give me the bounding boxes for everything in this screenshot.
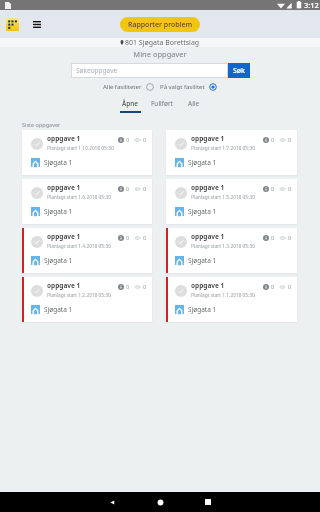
staticText: oppgave 1: [47, 134, 81, 143]
staticText: oppgave 1: [191, 232, 225, 241]
button[interactable]: Menu: [30, 15, 43, 33]
staticText: 0: [126, 136, 130, 143]
staticText: Planlagt start 1.10.2018 05:30: [47, 145, 114, 152]
staticText: 0: [143, 185, 147, 192]
staticText: Mine oppgaver: [0, 49, 320, 59]
button[interactable]: Logo: [6, 18, 19, 31]
staticText: Åpne: [122, 99, 139, 108]
staticText: Alle: [188, 99, 200, 108]
button[interactable]: oppgave 1: [166, 179, 297, 224]
staticText: 0: [288, 185, 292, 192]
staticText: Sjøgata 1: [44, 158, 73, 167]
staticText: Søk: [233, 66, 246, 76]
button[interactable]: oppgave 1: [166, 228, 297, 273]
staticText: 0: [143, 136, 147, 143]
button[interactable]: oppgave 1: [22, 277, 152, 322]
staticText: Sjøgata 1: [188, 158, 217, 167]
staticText: 0: [126, 283, 130, 290]
button[interactable]: Søk: [228, 63, 250, 78]
button[interactable]: Recent apps: [193, 492, 223, 512]
staticText: 0: [288, 283, 292, 290]
button[interactable]: oppgave 1: [166, 277, 297, 322]
staticText: 3:12: [304, 0, 319, 10]
staticText: oppgave 1: [191, 134, 225, 143]
button[interactable]: Alle fasiliteter: [103, 83, 154, 91]
staticText: Planlagt start 1.5.2018 05:30: [191, 194, 255, 201]
button[interactable]: oppgave 1: [22, 228, 152, 273]
button[interactable]: oppgave 1: [22, 130, 152, 175]
button[interactable]: Alle: [181, 99, 206, 113]
button[interactable]: oppgave 1: [22, 179, 152, 224]
staticText: Sjøgata 1: [44, 207, 73, 216]
staticText: Sjøgata 1: [188, 207, 217, 216]
staticText: oppgave 1: [191, 281, 225, 290]
staticText: Fullført: [151, 99, 173, 108]
staticText: Sjøgata 1: [44, 305, 73, 314]
staticText: 0: [271, 136, 275, 143]
staticText: 0: [288, 234, 292, 241]
staticText: 801 Sjøgata Borettslag: [125, 38, 200, 47]
staticText: 0: [143, 234, 147, 241]
button[interactable]: oppgave 1: [166, 130, 297, 175]
staticText: 0: [271, 234, 275, 241]
staticText: 0: [143, 283, 147, 290]
staticText: Alle fasiliteter: [103, 83, 142, 91]
staticText: Siste oppgaver: [22, 121, 61, 128]
staticText: 0: [126, 185, 130, 192]
staticText: På valgt fasilitet: [160, 83, 205, 91]
staticText: Planlagt start 1.2.2018 05:30: [47, 292, 111, 299]
staticText: Planlagt start 1.3.2018 05:30: [191, 243, 255, 250]
staticText: 0: [126, 234, 130, 241]
button[interactable]: På valgt fasilitet: [160, 83, 217, 91]
staticText: Planlagt start 1.6.2018 05:30: [47, 194, 111, 201]
button[interactable]: Back: [97, 492, 127, 512]
button[interactable]: Åpne: [118, 99, 143, 113]
staticText: Sjøgata 1: [44, 256, 73, 265]
staticText: oppgave 1: [191, 183, 225, 192]
staticText: 0: [288, 136, 292, 143]
staticText: Sjøgata 1: [188, 256, 217, 265]
staticText: Sjøgata 1: [188, 305, 217, 314]
staticText: Rapporter problem: [128, 20, 193, 30]
staticText: oppgave 1: [47, 183, 81, 192]
staticText: Planlagt start 1.4.2018 05:30: [47, 243, 111, 250]
button[interactable]: Home: [145, 492, 175, 512]
staticText: Søkeoppgave: [76, 66, 118, 75]
staticText: Planlagt start 1.1.2018 05:30: [191, 292, 255, 299]
button[interactable]: Rapporter problem: [120, 17, 200, 32]
staticText: oppgave 1: [47, 232, 81, 241]
staticText: 0: [271, 283, 275, 290]
staticText: Planlagt start 1.7.2018 05:30: [191, 145, 255, 152]
staticText: 0: [271, 185, 275, 192]
button[interactable]: Søkeoppgave: [71, 63, 228, 78]
staticText: oppgave 1: [47, 281, 81, 290]
button[interactable]: Fullført: [149, 99, 175, 113]
